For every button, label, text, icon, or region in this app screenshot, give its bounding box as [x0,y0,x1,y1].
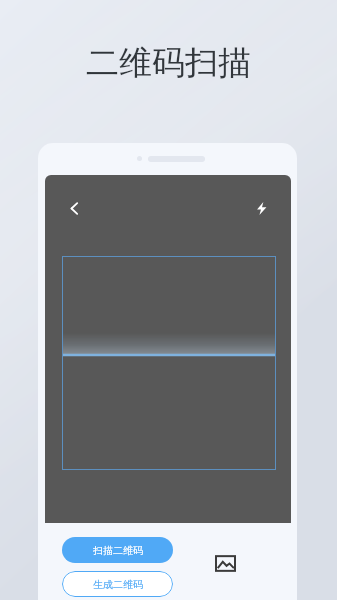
staticText: 生成二维码 [93,578,143,591]
button[interactable]: Back [56,190,92,226]
staticText: 扫描二维码 [93,544,143,557]
staticText: 二维码扫描 [0,42,337,84]
button[interactable]: Flash [243,190,279,226]
button[interactable]: 生成二维码 [62,571,173,597]
button[interactable]: Gallery [208,546,242,580]
button[interactable]: 扫描二维码 [62,537,173,563]
